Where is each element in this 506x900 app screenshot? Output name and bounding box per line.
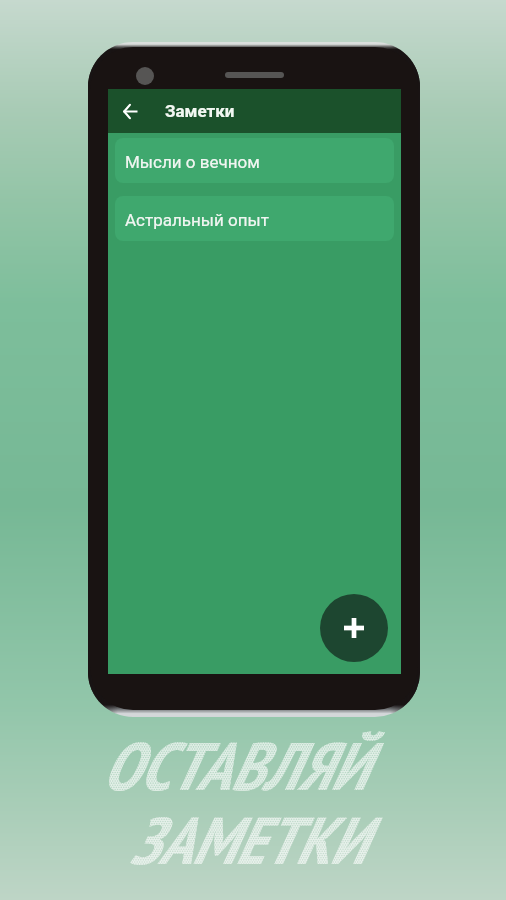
staticText: Астральный опыт — [125, 210, 269, 230]
button[interactable]: Мысли о вечном — [115, 138, 394, 183]
staticText: Мысли о вечном — [125, 152, 260, 172]
staticText: Заметки — [165, 101, 235, 121]
staticText: ОСТАВЛЯЙ — [101, 722, 366, 809]
button[interactable]: Add note — [320, 594, 388, 662]
button[interactable]: Астральный опыт — [115, 196, 394, 241]
staticText: ЗАМЕТКИ — [129, 797, 365, 882]
button[interactable]: Back — [108, 89, 152, 133]
